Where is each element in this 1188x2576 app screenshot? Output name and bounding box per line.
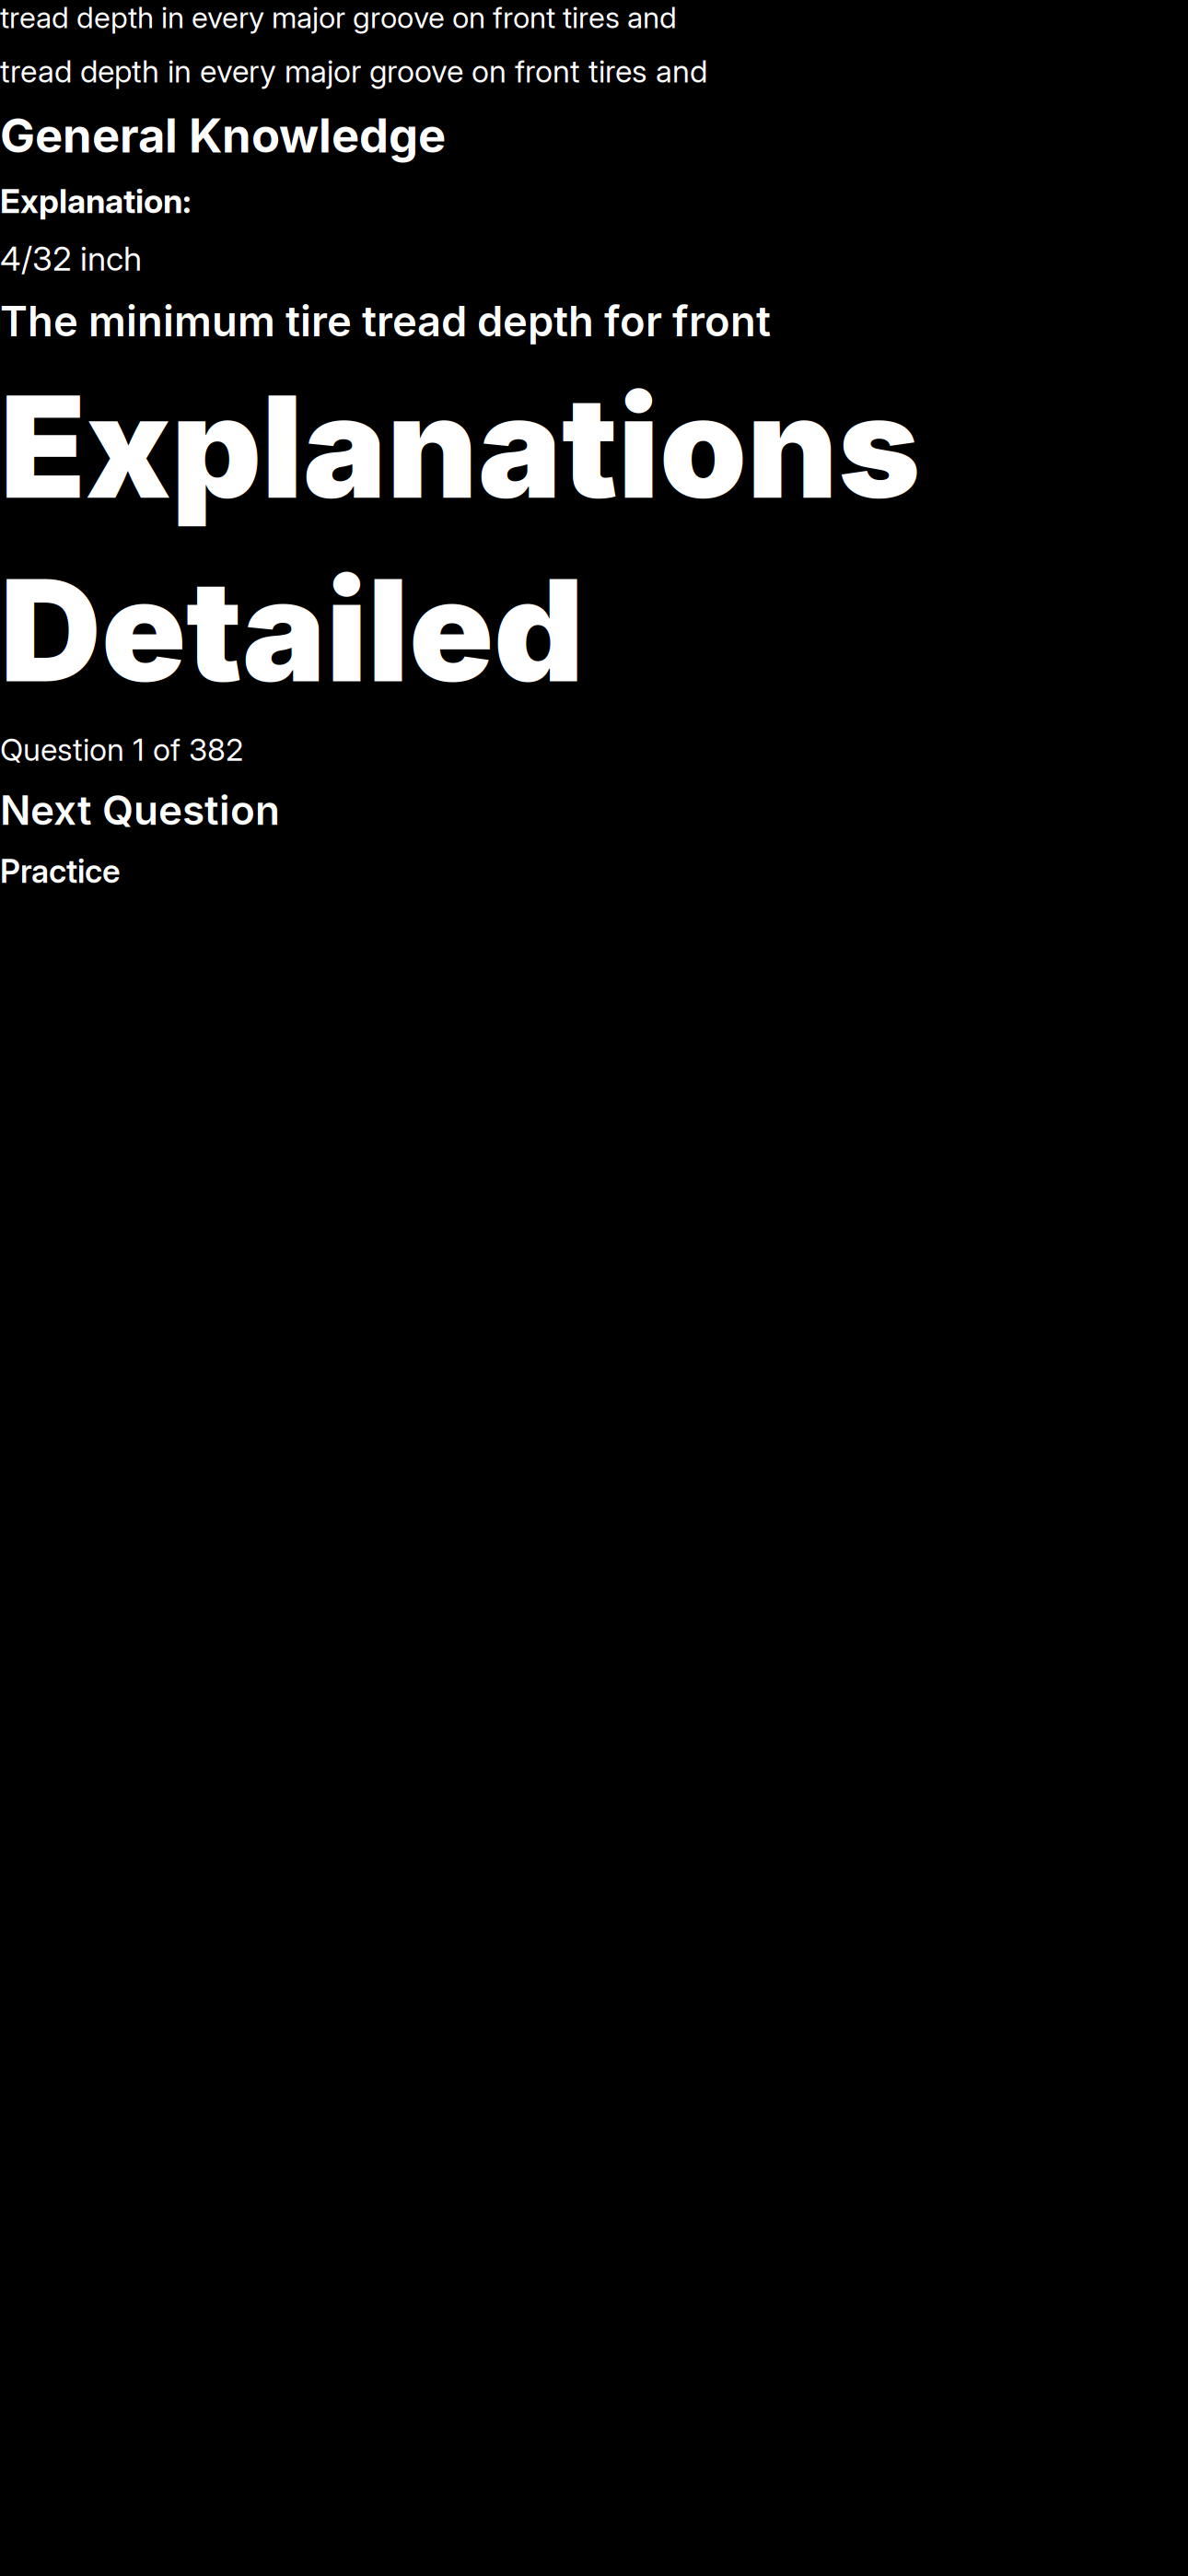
staticText: Practice	[0, 852, 121, 890]
staticText: Next Question	[0, 786, 280, 834]
staticText: 4/32 inch	[0, 239, 142, 278]
staticText: Explanations	[0, 364, 920, 529]
staticText: tread depth in every major groove on fro…	[0, 0, 677, 35]
staticText: tread depth in every major groove on fro…	[0, 53, 707, 89]
staticText: Detailed	[0, 548, 584, 713]
staticText: General Knowledge	[0, 108, 446, 163]
staticText: The minimum tire tread depth for front	[0, 296, 771, 346]
staticText: Question 1 of 382	[0, 731, 243, 768]
staticText: Explanation:	[0, 181, 192, 220]
